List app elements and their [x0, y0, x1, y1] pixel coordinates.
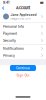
- button[interactable]: Jane Appleseed: [0, 11, 46, 22]
- staticText: Privacy: [3, 53, 15, 58]
- button[interactable]: Back: [0, 6, 6, 10]
- staticText: Payment: [3, 31, 17, 36]
- button[interactable]: Sign Out: [16, 73, 29, 78]
- staticText: Account: [16, 6, 30, 10]
- button[interactable]: Continue: [10, 65, 36, 71]
- staticText: Notifications: [3, 46, 24, 51]
- button[interactable]: Notifications: [0, 45, 46, 52]
- button[interactable]: Security: [0, 37, 46, 44]
- staticText: Jane Appleseed: [11, 13, 37, 17]
- staticText: Personal Info: [3, 24, 24, 29]
- staticText: Continue: [16, 66, 30, 70]
- button[interactable]: Payment: [0, 30, 46, 37]
- button[interactable]: Personal Info: [0, 23, 46, 30]
- staticText: Security: [3, 38, 16, 43]
- staticText: ▮▮▮: [40, 1, 43, 4]
- staticText: 9:41: [3, 1, 9, 4]
- button[interactable]: Privacy: [0, 52, 46, 59]
- staticText: Sign Out: [16, 74, 29, 77]
- staticText: jane@icloud.com: [11, 17, 31, 20]
